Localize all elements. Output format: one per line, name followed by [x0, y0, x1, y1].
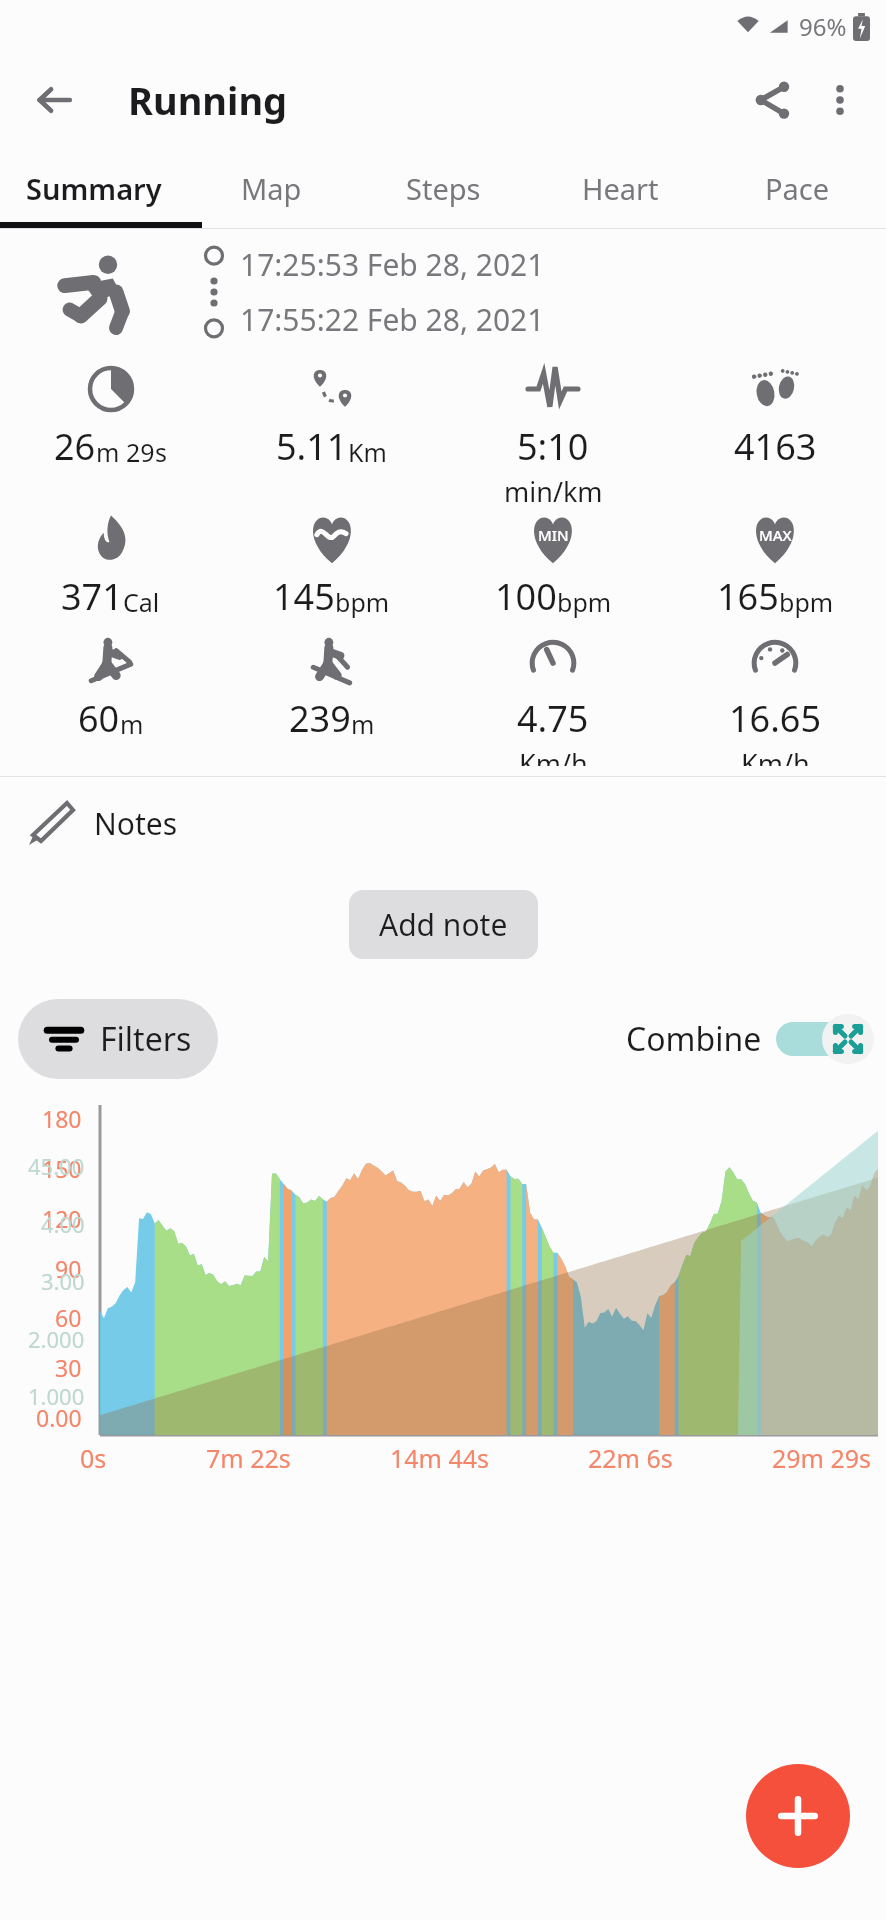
staticText: 2.000: [28, 1324, 85, 1354]
staticText: 3.00: [41, 1266, 85, 1296]
staticText: 371: [61, 572, 123, 621]
staticText: 29m 29s: [772, 1441, 872, 1475]
staticText: Add note: [379, 904, 508, 945]
staticText: Heart: [582, 169, 659, 208]
staticText: min/km: [504, 473, 603, 504]
button[interactable]: Heart: [532, 148, 709, 228]
staticText: 5:10: [517, 422, 589, 471]
button[interactable]: Map: [188, 148, 355, 228]
staticText: 4163: [734, 422, 817, 471]
button[interactable]: Filters: [18, 999, 218, 1079]
staticText: 26: [54, 422, 96, 471]
staticText: Km/h: [741, 745, 810, 766]
button[interactable]: 4.75: [442, 626, 664, 766]
staticText: 100: [495, 572, 557, 621]
staticText: 4.00: [41, 1209, 85, 1239]
staticText: s: [155, 435, 167, 469]
staticText: Running: [128, 74, 288, 126]
button[interactable]: Combine: [626, 1014, 876, 1064]
button[interactable]: 239: [221, 626, 442, 766]
button[interactable]: 5.11: [221, 354, 442, 504]
staticText: 239: [289, 694, 351, 743]
staticText: 180: [42, 1103, 82, 1134]
button[interactable]: MIN: [442, 504, 664, 626]
button[interactable]: Share: [736, 64, 808, 136]
staticText: bpm: [335, 585, 390, 619]
staticText: MIN: [538, 525, 569, 545]
staticText: m: [120, 707, 144, 741]
staticText: 96%: [799, 10, 847, 43]
staticText: Map: [241, 169, 302, 208]
staticText: bpm: [779, 585, 834, 619]
staticText: 5.11: [276, 422, 348, 471]
button[interactable]: Add note: [349, 890, 538, 959]
staticText: 22m 6s: [588, 1441, 673, 1475]
button[interactable]: Summary: [0, 148, 188, 228]
staticText: 30: [55, 1352, 82, 1383]
button[interactable]: Back: [22, 68, 86, 132]
staticText: m: [351, 707, 375, 741]
staticText: Km: [348, 435, 387, 469]
staticText: 120: [42, 1203, 82, 1234]
button[interactable]: 371: [0, 504, 221, 626]
staticText: 60: [55, 1302, 82, 1333]
staticText: 90: [55, 1253, 82, 1284]
button[interactable]: Pace: [709, 148, 886, 228]
staticText: Pace: [765, 169, 830, 208]
button[interactable]: 5:10: [442, 354, 664, 504]
staticText: MAX: [759, 525, 792, 545]
staticText: 0.00: [36, 1402, 82, 1433]
staticText: 60: [78, 694, 120, 743]
staticText: bpm: [557, 585, 612, 619]
staticText: 7m 22s: [206, 1441, 291, 1475]
button[interactable]: MAX: [664, 504, 886, 626]
staticText: 0s: [80, 1441, 107, 1475]
button[interactable]: 60: [0, 626, 221, 766]
button[interactable]: 26: [0, 354, 221, 504]
staticText: Filters: [100, 1017, 192, 1061]
button[interactable]: Add: [746, 1764, 850, 1868]
staticText: 1.000: [28, 1381, 85, 1411]
staticText: Steps: [406, 169, 481, 208]
staticText: 17:25:53 Feb 28, 2021: [240, 244, 545, 285]
button[interactable]: 16.65: [664, 626, 886, 766]
staticText: 145: [273, 572, 335, 621]
staticText: 165: [717, 572, 779, 621]
staticText: 150: [42, 1153, 82, 1184]
button[interactable]: Steps: [355, 148, 532, 228]
button[interactable]: 145: [221, 504, 442, 626]
staticText: Combine: [626, 1017, 762, 1061]
staticText: m 29: [96, 435, 155, 469]
staticText: 16.65: [729, 694, 822, 743]
staticText: Cal: [123, 585, 160, 619]
staticText: Notes: [94, 803, 178, 844]
staticText: 4.75: [517, 694, 589, 743]
button[interactable]: 4163: [664, 354, 886, 504]
staticText: 45.00: [28, 1151, 85, 1181]
staticText: 14m 44s: [390, 1441, 490, 1475]
staticText: Km/h: [519, 745, 588, 766]
staticText: 17:55:22 Feb 28, 2021: [240, 299, 545, 340]
staticText: Summary: [26, 169, 162, 208]
button[interactable]: More options: [808, 68, 872, 132]
